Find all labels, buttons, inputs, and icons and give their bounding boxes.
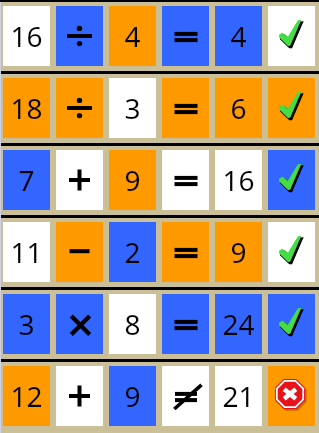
staticText: 7: [18, 161, 35, 199]
staticText: 21: [222, 377, 255, 415]
other: equals: [162, 78, 209, 138]
button[interactable]: Correct: [268, 150, 315, 210]
other: divided by: [56, 78, 103, 138]
staticText: 16: [10, 17, 43, 55]
button[interactable]: Incorrect: [268, 366, 315, 426]
staticText: 9: [230, 233, 247, 271]
button[interactable]: 8: [109, 294, 156, 354]
button[interactable]: 21: [215, 366, 262, 426]
staticText: 8: [124, 305, 141, 343]
button[interactable]: plus: [56, 366, 103, 426]
button[interactable]: equals: [162, 294, 209, 354]
button[interactable]: Correct: [268, 222, 315, 282]
other: plus: [56, 150, 103, 210]
button[interactable]: equals: [162, 150, 209, 210]
button[interactable]: 11: [3, 222, 50, 282]
button[interactable]: 4: [215, 6, 262, 66]
staticText: 12: [10, 377, 43, 415]
staticText: 18: [10, 89, 43, 127]
other: plus: [56, 366, 103, 426]
staticText: 16: [222, 161, 255, 199]
other: equals: [162, 6, 209, 66]
other: times: [56, 294, 103, 354]
button[interactable]: 9: [215, 222, 262, 282]
button[interactable]: 9: [109, 366, 156, 426]
button[interactable]: equals: [162, 222, 209, 282]
other: equals: [162, 150, 209, 210]
other: Incorrect: [276, 380, 308, 412]
button[interactable]: divided by: [56, 78, 103, 138]
other: Correct: [279, 308, 305, 339]
button[interactable]: equals: [162, 6, 209, 66]
staticText: 3: [124, 89, 141, 127]
button[interactable]: divided by: [56, 6, 103, 66]
staticText: 11: [10, 233, 43, 271]
button[interactable]: 6: [215, 78, 262, 138]
button[interactable]: 16: [215, 150, 262, 210]
button[interactable]: 18: [3, 78, 50, 138]
other: Correct: [279, 164, 305, 195]
other: equals: [162, 294, 209, 354]
button[interactable]: 16: [3, 6, 50, 66]
staticText: 6: [230, 89, 247, 127]
button[interactable]: equals: [162, 78, 209, 138]
staticText: 3: [18, 305, 35, 343]
button[interactable]: Correct: [268, 78, 315, 138]
button[interactable]: plus: [56, 150, 103, 210]
staticText: 4: [230, 17, 247, 55]
button[interactable]: 4: [109, 6, 156, 66]
button[interactable]: 12: [3, 366, 50, 426]
other: equals: [162, 222, 209, 282]
button[interactable]: times: [56, 294, 103, 354]
button[interactable]: minus: [56, 222, 103, 282]
other: minus: [56, 222, 103, 282]
button[interactable]: 9: [109, 150, 156, 210]
button[interactable]: 3: [3, 294, 50, 354]
other: not equals: [162, 366, 209, 426]
staticText: 9: [124, 161, 141, 199]
button[interactable]: Correct: [268, 294, 315, 354]
button[interactable]: not equals: [162, 366, 209, 426]
button[interactable]: 2: [109, 222, 156, 282]
button[interactable]: 24: [215, 294, 262, 354]
other: Correct: [279, 20, 305, 51]
staticText: 2: [124, 233, 141, 271]
staticText: 4: [124, 17, 141, 55]
button[interactable]: Correct: [268, 6, 315, 66]
other: divided by: [56, 6, 103, 66]
button[interactable]: 3: [109, 78, 156, 138]
other: Correct: [279, 92, 305, 123]
staticText: 24: [222, 305, 255, 343]
other: Correct: [279, 236, 305, 267]
button[interactable]: 7: [3, 150, 50, 210]
staticText: 9: [124, 377, 141, 415]
